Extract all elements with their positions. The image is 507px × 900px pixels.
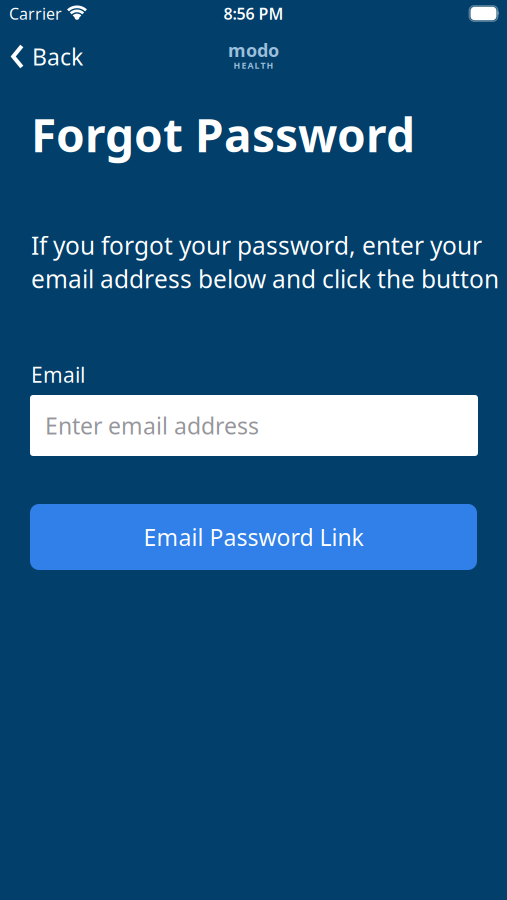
staticText: Back [32,41,83,72]
staticText: H E A L T H [233,59,273,71]
staticText: Email [31,360,85,389]
staticText: Forgot Password [31,103,415,166]
staticText: Carrier [9,3,62,24]
staticText: If you forgot your password, enter your … [31,229,499,295]
button[interactable]: Email Password Link [30,504,477,570]
staticText: Enter email address [45,410,259,441]
staticText: 8:56 PM [223,3,283,24]
button[interactable]: Back [0,41,89,72]
staticText: modo [228,38,279,62]
staticText: Email Password Link [143,521,363,553]
button[interactable]: Enter email address [30,395,478,456]
